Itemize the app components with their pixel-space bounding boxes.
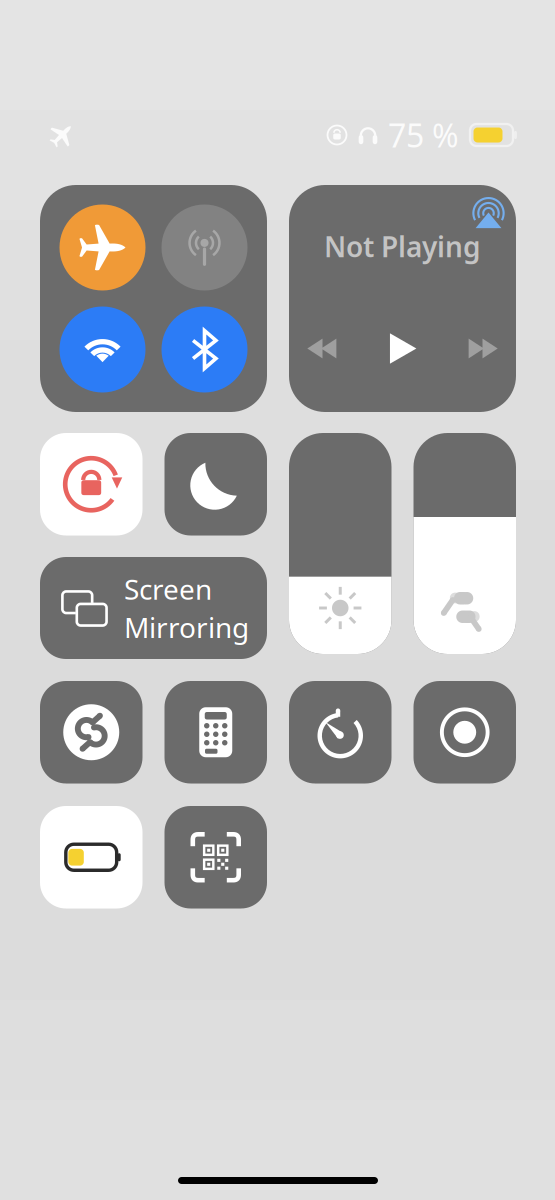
button[interactable]: Bluetooth <box>161 306 247 392</box>
button[interactable]: Rotation Lock <box>40 433 142 535</box>
button[interactable]: Next <box>461 327 503 369</box>
button[interactable]: Scan QR Code <box>164 806 267 908</box>
button[interactable]: Screen Recording <box>413 681 516 783</box>
button[interactable]: Play <box>381 327 423 369</box>
button[interactable]: Brightness <box>289 433 391 654</box>
button[interactable]: Cellular Data <box>161 204 247 290</box>
button[interactable]: Screen <box>40 557 267 659</box>
button[interactable]: Volume <box>413 433 516 654</box>
button[interactable]: Low Power Mode <box>40 806 142 908</box>
button[interactable]: Previous <box>301 327 343 369</box>
button[interactable]: Wi-Fi <box>59 306 145 392</box>
staticText: Screen <box>124 570 212 607</box>
button[interactable]: Do Not Disturb <box>164 433 267 535</box>
button[interactable]: Calculator <box>164 681 267 783</box>
button[interactable]: Music Recognition <box>40 681 142 783</box>
button[interactable]: Airplane Mode <box>59 204 145 290</box>
staticText: Mirroring <box>124 608 249 646</box>
button[interactable]: Timer <box>289 681 391 783</box>
staticText: 75 % <box>388 114 459 156</box>
staticText: Not Playing <box>324 228 481 265</box>
button[interactable]: AirPlay <box>466 190 510 234</box>
